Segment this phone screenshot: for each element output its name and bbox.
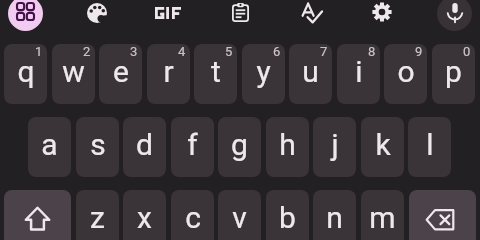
staticText: a bbox=[41, 127, 58, 162]
staticText: v bbox=[232, 200, 247, 235]
staticText: c bbox=[185, 200, 201, 235]
staticText: 3 bbox=[130, 44, 138, 59]
staticText: k bbox=[375, 127, 391, 162]
staticText: l bbox=[426, 127, 434, 162]
staticText: f bbox=[187, 127, 198, 162]
button[interactable]: m bbox=[361, 190, 404, 240]
staticText: q bbox=[17, 54, 35, 89]
staticText: o bbox=[397, 54, 415, 89]
staticText: i bbox=[355, 54, 363, 89]
staticText: b bbox=[279, 200, 296, 235]
staticText: 4 bbox=[178, 44, 186, 59]
button[interactable]: p bbox=[432, 44, 475, 104]
button[interactable]: Voice input bbox=[437, 0, 472, 31]
staticText: t bbox=[211, 54, 221, 89]
staticText: p bbox=[445, 54, 462, 89]
staticText: 2 bbox=[83, 44, 91, 59]
staticText: 1 bbox=[35, 44, 43, 59]
button[interactable]: d bbox=[123, 117, 166, 177]
button[interactable]: n bbox=[313, 190, 356, 240]
staticText: w bbox=[62, 54, 85, 89]
staticText: s bbox=[90, 127, 106, 162]
button[interactable]: w bbox=[52, 44, 95, 104]
staticText: 9 bbox=[415, 44, 423, 59]
button[interactable]: h bbox=[266, 117, 309, 177]
button[interactable]: z bbox=[76, 190, 119, 240]
button[interactable]: y bbox=[242, 44, 285, 104]
button[interactable]: r bbox=[147, 44, 190, 104]
button[interactable]: Clipboard bbox=[224, 0, 256, 28]
staticText: 0 bbox=[463, 44, 471, 59]
button[interactable]: t bbox=[194, 44, 237, 104]
button[interactable]: g bbox=[218, 117, 261, 177]
button[interactable]: k bbox=[361, 117, 404, 177]
button[interactable]: Backspace bbox=[409, 190, 476, 240]
staticText: x bbox=[137, 200, 152, 235]
button[interactable]: b bbox=[266, 190, 309, 240]
button[interactable]: e bbox=[99, 44, 142, 104]
staticText: h bbox=[279, 127, 296, 162]
button[interactable]: v bbox=[218, 190, 261, 240]
button[interactable]: Spell check bbox=[295, 0, 327, 30]
button[interactable]: l bbox=[408, 117, 451, 177]
staticText: r bbox=[163, 54, 174, 89]
button[interactable]: Themes bbox=[81, 0, 113, 29]
button[interactable]: s bbox=[76, 117, 119, 177]
button[interactable]: Shift bbox=[4, 190, 71, 240]
button[interactable]: c bbox=[171, 190, 214, 240]
staticText: j bbox=[331, 127, 339, 162]
button[interactable]: x bbox=[123, 190, 166, 240]
button[interactable]: GIF bbox=[141, 0, 195, 27]
staticText: d bbox=[136, 127, 153, 162]
button[interactable]: j bbox=[313, 117, 356, 177]
staticText: y bbox=[256, 54, 271, 89]
button[interactable]: o bbox=[384, 44, 427, 104]
staticText: 8 bbox=[368, 44, 376, 59]
staticText: 5 bbox=[225, 44, 233, 59]
staticText: n bbox=[326, 200, 343, 235]
staticText: m bbox=[369, 200, 396, 235]
staticText: g bbox=[231, 127, 248, 162]
staticText: 7 bbox=[320, 44, 328, 59]
button[interactable]: i bbox=[337, 44, 380, 104]
button[interactable]: Emoji and stickers bbox=[8, 0, 43, 31]
staticText: e bbox=[113, 54, 129, 89]
button[interactable]: q bbox=[4, 44, 47, 104]
staticText: z bbox=[90, 200, 105, 235]
button[interactable]: a bbox=[28, 117, 71, 177]
button[interactable]: f bbox=[171, 117, 214, 177]
button[interactable]: Settings bbox=[366, 0, 398, 28]
button[interactable]: u bbox=[289, 44, 332, 104]
staticText: u bbox=[302, 54, 319, 89]
staticText: 6 bbox=[273, 44, 281, 59]
